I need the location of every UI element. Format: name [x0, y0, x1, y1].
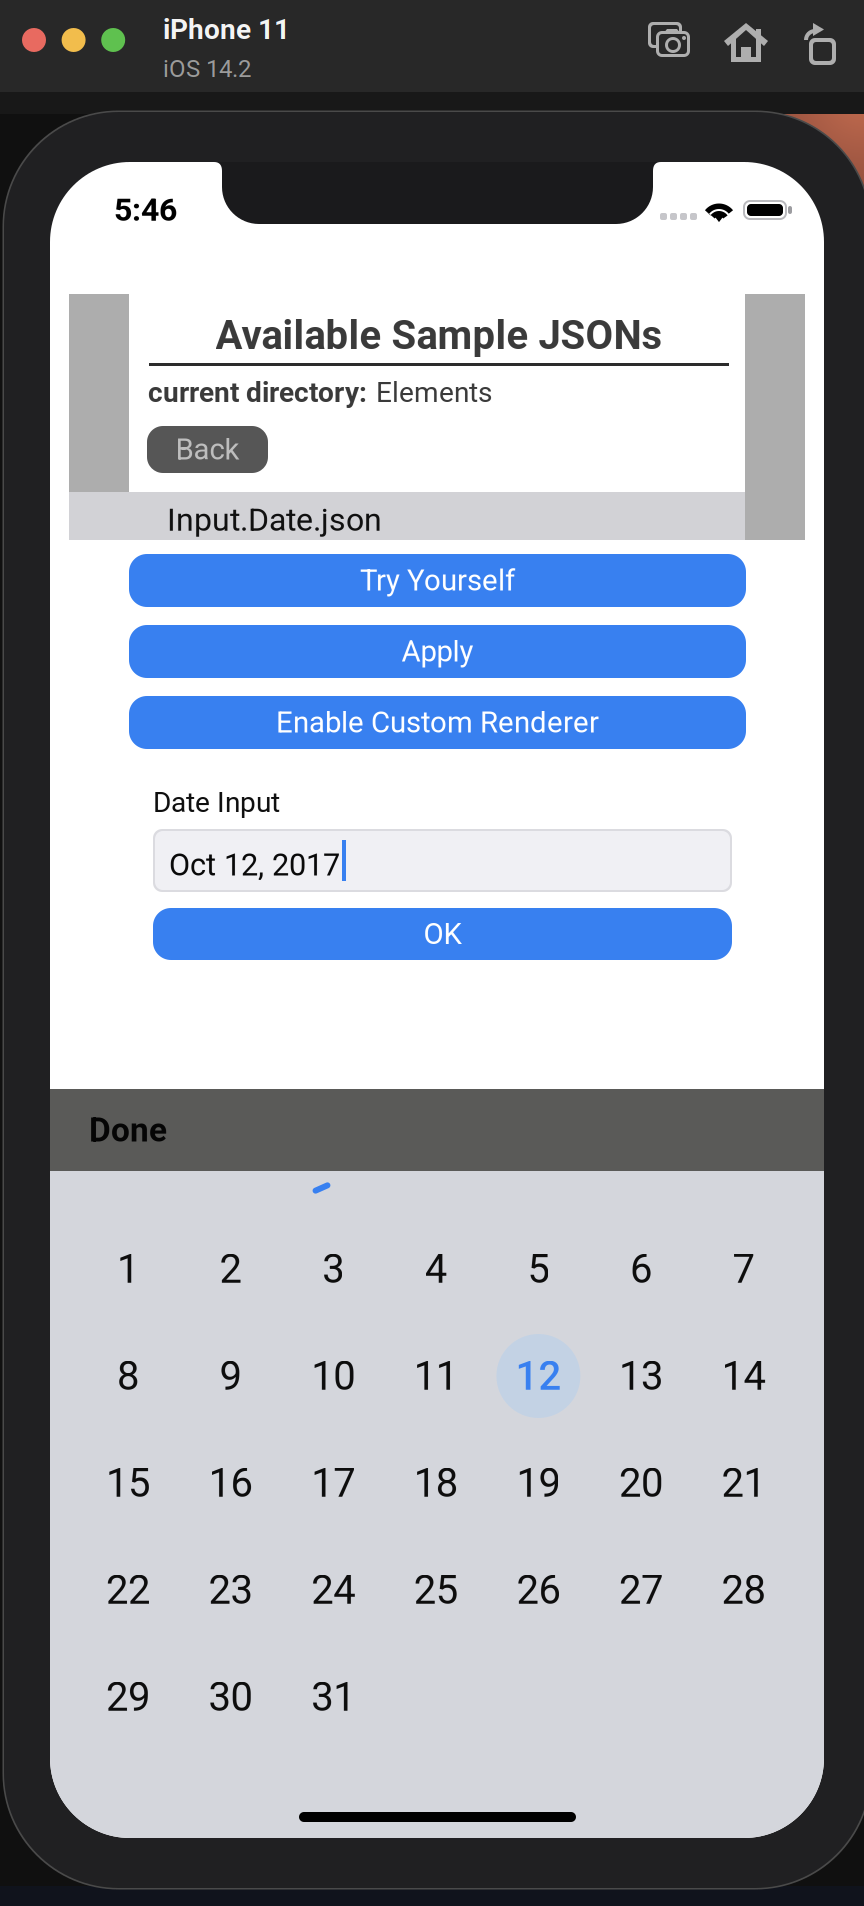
staticText: Back: [175, 432, 239, 467]
staticText: Done: [89, 1110, 167, 1150]
staticText: 9: [220, 1353, 242, 1399]
staticText: 18: [414, 1460, 458, 1506]
button[interactable]: Back: [147, 426, 268, 473]
staticText: iPhone 11: [163, 13, 290, 46]
staticText: Available Sample JSONs: [215, 312, 662, 359]
staticText: iOS 14.2: [163, 55, 251, 83]
staticText: 13: [619, 1353, 663, 1399]
button[interactable]: Home: [722, 18, 770, 66]
staticText: 22: [106, 1567, 150, 1613]
staticText: 16: [209, 1460, 253, 1506]
staticText: Try Yourself: [360, 563, 515, 598]
staticText: 1: [117, 1246, 139, 1292]
staticText: 25: [414, 1567, 458, 1613]
button[interactable]: Enable Custom Renderer: [129, 696, 746, 749]
staticText: 29: [106, 1674, 150, 1720]
staticText: 5:46: [114, 191, 177, 228]
staticText: 17: [311, 1460, 355, 1506]
staticText: 3: [322, 1246, 344, 1292]
staticText: 26: [516, 1567, 560, 1613]
staticText: 5: [527, 1246, 549, 1292]
staticText: Oct 12, 2017: [169, 847, 340, 883]
staticText: OK: [423, 917, 461, 951]
staticText: 8: [117, 1353, 139, 1399]
staticText: 27: [619, 1567, 663, 1613]
staticText: 28: [722, 1567, 766, 1613]
staticText: 7: [733, 1246, 755, 1292]
button[interactable]: Zoom: [101, 28, 125, 52]
button[interactable]: Apply: [129, 625, 746, 678]
staticText: 12: [515, 1353, 561, 1399]
button[interactable]: Close: [22, 28, 46, 52]
button[interactable]: Input.Date.json: [69, 492, 745, 540]
staticText: 21: [722, 1460, 766, 1506]
button[interactable]: Done: [89, 1089, 239, 1171]
staticText: 20: [619, 1460, 663, 1506]
button[interactable]: Rotate: [798, 18, 844, 66]
staticText: 15: [106, 1460, 150, 1506]
staticText: Enable Custom Renderer: [276, 705, 599, 740]
staticText: 2: [220, 1246, 242, 1292]
staticText: 14: [722, 1353, 766, 1399]
staticText: 31: [311, 1674, 355, 1720]
staticText: 10: [311, 1353, 355, 1399]
button[interactable]: Screenshot: [644, 18, 696, 66]
staticText: 6: [630, 1246, 652, 1292]
button[interactable]: Try Yourself: [129, 554, 746, 607]
staticText: 30: [209, 1674, 253, 1720]
staticText: 11: [414, 1353, 458, 1399]
staticText: Input.Date.json: [167, 501, 382, 538]
staticText: 23: [209, 1567, 253, 1613]
staticText: current directory:: [148, 376, 367, 409]
staticText: 4: [425, 1246, 447, 1292]
staticText: Elements: [376, 376, 492, 409]
staticText: Apply: [401, 634, 473, 669]
button[interactable]: OK: [153, 908, 732, 960]
staticText: 19: [516, 1460, 560, 1506]
staticText: 24: [311, 1567, 355, 1613]
staticText: Date Input: [153, 786, 280, 819]
button[interactable]: Minimise: [62, 28, 86, 52]
